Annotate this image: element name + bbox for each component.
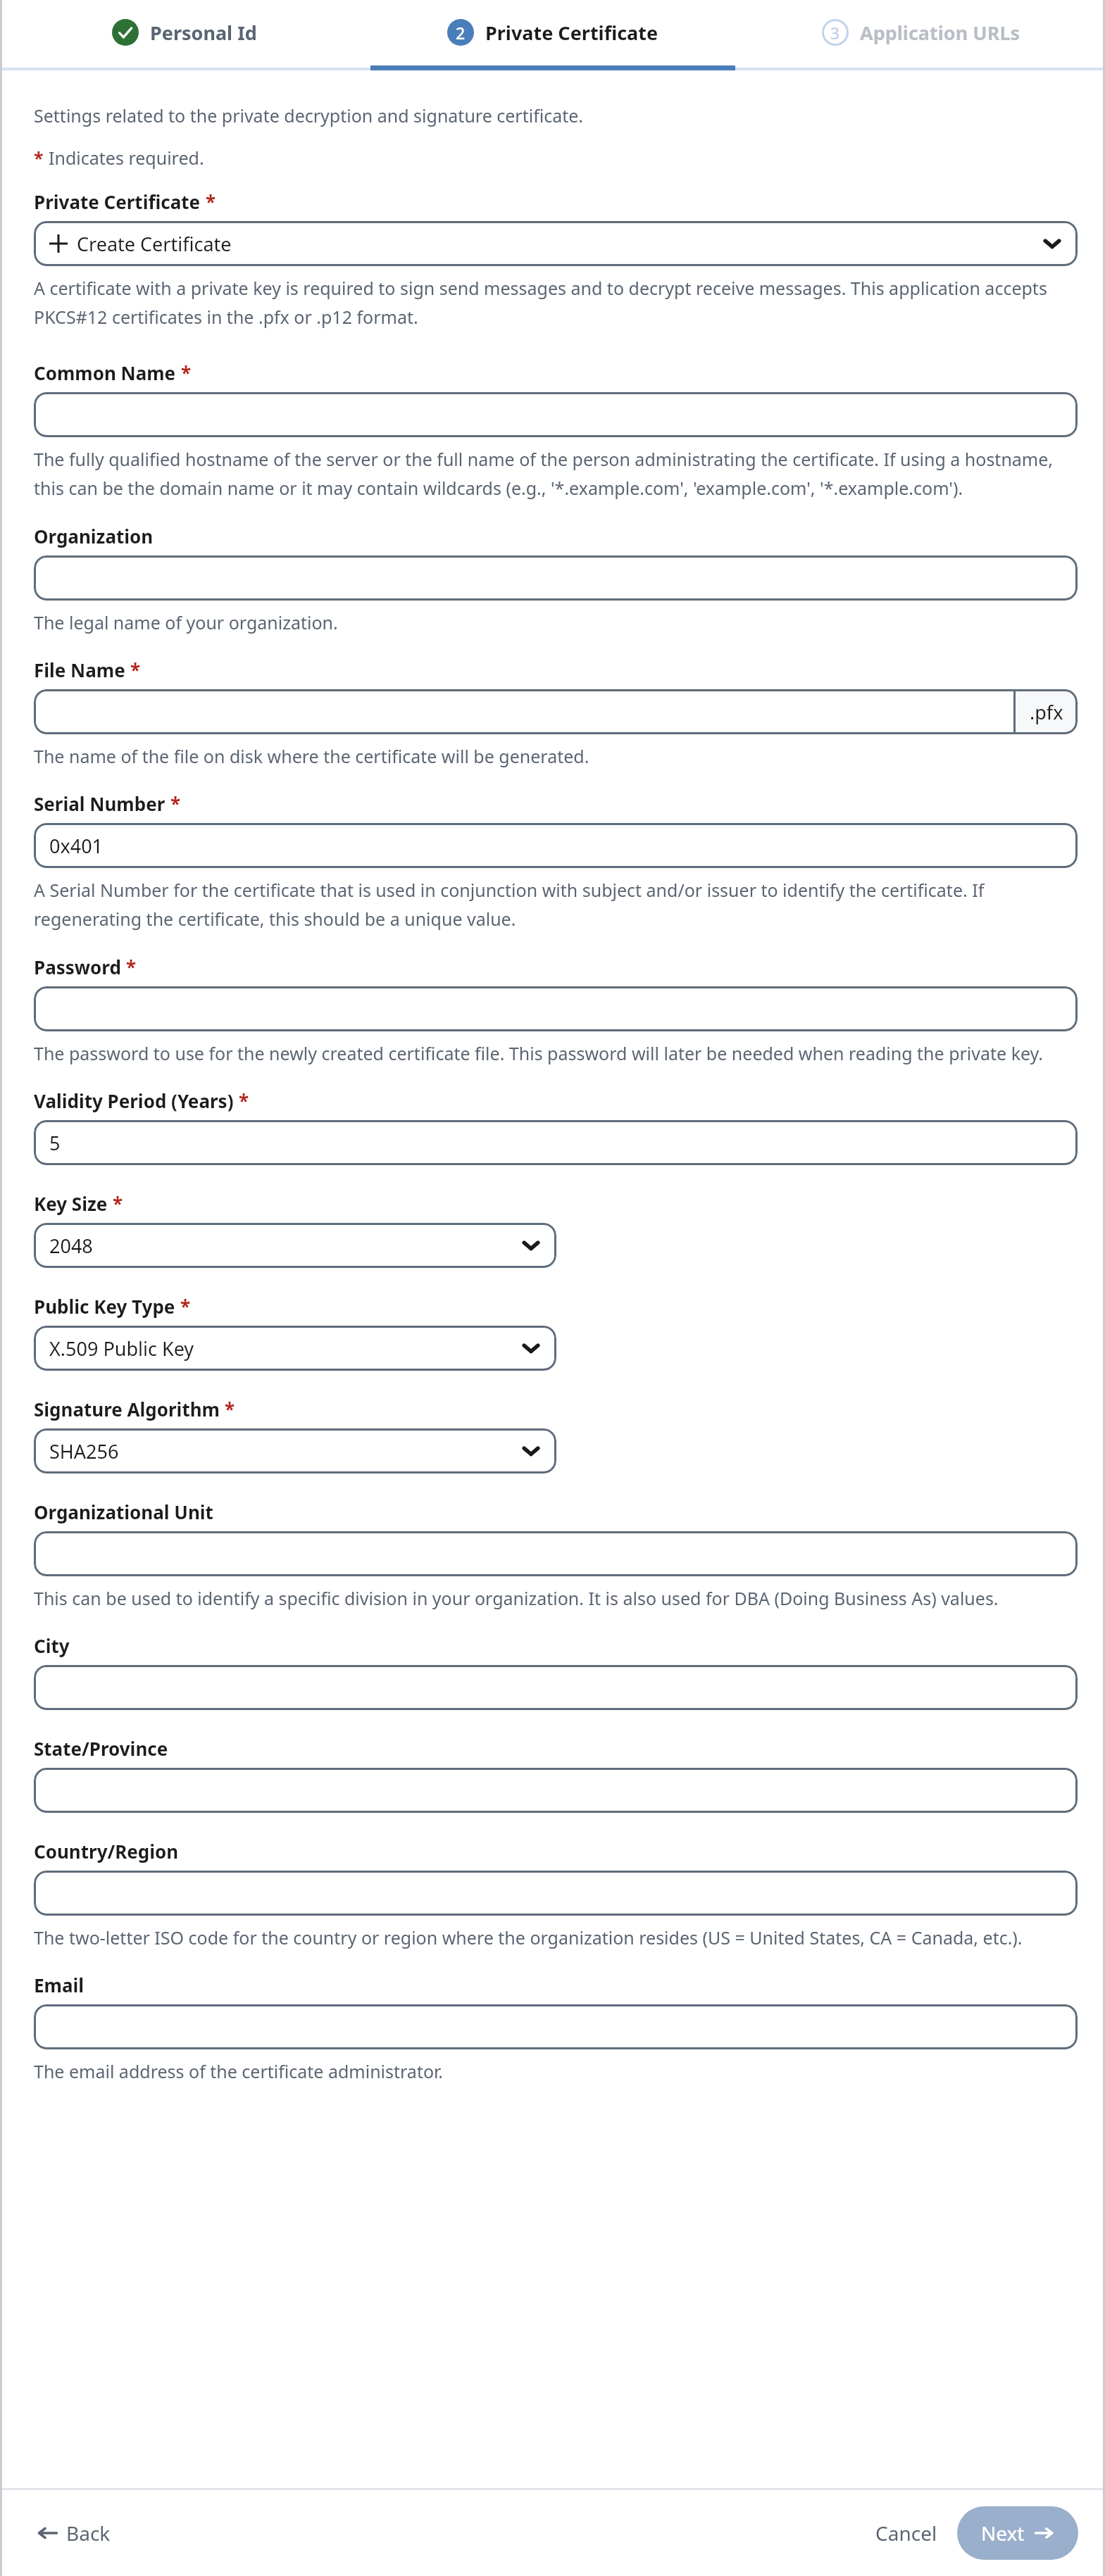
button[interactable]: Back xyxy=(28,2511,119,2555)
button[interactable]: 0x401 xyxy=(34,823,1078,868)
staticText: The legal name of your organization. xyxy=(34,610,338,634)
staticText: * xyxy=(170,791,181,816)
staticText: Organization xyxy=(34,524,154,548)
button[interactable]: Cancel xyxy=(864,2510,949,2556)
staticText: The name of the file on disk where the c… xyxy=(34,744,589,768)
staticText: Private Certificate xyxy=(34,189,201,214)
staticText: SHA256 xyxy=(49,1438,119,1464)
staticText: 2 xyxy=(456,22,466,44)
staticText: 2048 xyxy=(49,1233,93,1259)
button[interactable]: Personal Id xyxy=(0,0,368,70)
staticText: Signature Algorithm xyxy=(34,1397,220,1421)
staticText: * xyxy=(239,1088,249,1113)
button[interactable] xyxy=(34,1768,1078,1813)
button[interactable] xyxy=(34,392,1078,437)
staticText: Organizational Unit xyxy=(34,1500,213,1524)
button[interactable]: Create Certificate xyxy=(34,221,1078,266)
button[interactable]: SHA256 xyxy=(34,1428,556,1474)
button[interactable] xyxy=(34,1871,1078,1916)
button[interactable]: Next xyxy=(957,2506,1078,2560)
staticText: Personal Id xyxy=(150,20,257,46)
staticText: Back xyxy=(66,2520,111,2546)
staticText: Common Name xyxy=(34,360,176,385)
staticText: Validity Period (Years) xyxy=(34,1088,234,1113)
button[interactable]: 2 xyxy=(368,0,737,70)
button[interactable]: X.509 Public Key xyxy=(34,1326,556,1371)
staticText: This can be used to identify a specific … xyxy=(34,1586,999,1610)
staticText: Email xyxy=(34,1973,85,1997)
button[interactable] xyxy=(34,2004,1078,2049)
staticText: * xyxy=(34,146,44,170)
staticText: A certificate with a private key is requ… xyxy=(34,276,1078,329)
button[interactable]: .pfx xyxy=(34,689,1078,734)
button[interactable] xyxy=(34,986,1078,1031)
staticText: Country/Region xyxy=(34,1839,179,1864)
staticText: * xyxy=(130,658,141,682)
staticText: A Serial Number for the certificate that… xyxy=(34,878,1078,931)
staticText: Serial Number xyxy=(34,791,166,816)
button[interactable] xyxy=(34,1531,1078,1576)
staticText: * xyxy=(206,189,216,214)
staticText: 3 xyxy=(830,22,840,44)
staticText: * xyxy=(113,1191,123,1216)
staticText: Application URLs xyxy=(860,20,1020,46)
other: Expand xyxy=(521,1338,541,1358)
other: Expand xyxy=(1042,234,1062,253)
button[interactable]: 3 xyxy=(737,0,1105,70)
button[interactable]: 2048 xyxy=(34,1223,556,1268)
staticText: Next xyxy=(981,2520,1025,2546)
other: Expand xyxy=(521,1441,541,1461)
staticText: Create Certificate xyxy=(77,231,232,257)
staticText: The two-letter ISO code for the country … xyxy=(34,1925,1023,1949)
staticText: Cancel xyxy=(875,2520,937,2546)
staticText: 5 xyxy=(49,1130,61,1156)
staticText: Indicates required. xyxy=(49,146,204,170)
staticText: State/Province xyxy=(34,1736,168,1761)
other: Expand xyxy=(521,1236,541,1255)
staticText: * xyxy=(181,360,192,385)
staticText: The fully qualified hostname of the serv… xyxy=(34,447,1078,501)
staticText: The email address of the certificate adm… xyxy=(34,2059,444,2083)
staticText: * xyxy=(126,955,137,979)
staticText: * xyxy=(225,1397,235,1421)
button[interactable] xyxy=(34,1665,1078,1710)
button[interactable] xyxy=(34,555,1078,601)
staticText: File Name xyxy=(34,658,125,682)
staticText: * xyxy=(180,1294,191,1319)
staticText: The password to use for the newly create… xyxy=(34,1041,1044,1065)
staticText: Password xyxy=(34,955,121,979)
staticText: .pfx xyxy=(1030,699,1063,725)
staticText: 0x401 xyxy=(49,833,104,859)
staticText: Public Key Type xyxy=(34,1294,175,1319)
staticText: City xyxy=(34,1633,70,1658)
staticText: Settings related to the private decrypti… xyxy=(34,103,584,127)
staticText: X.509 Public Key xyxy=(49,1336,194,1362)
staticText: Key Size xyxy=(34,1191,108,1216)
staticText: Private Certificate xyxy=(485,20,658,46)
button[interactable]: 5 xyxy=(34,1120,1078,1165)
